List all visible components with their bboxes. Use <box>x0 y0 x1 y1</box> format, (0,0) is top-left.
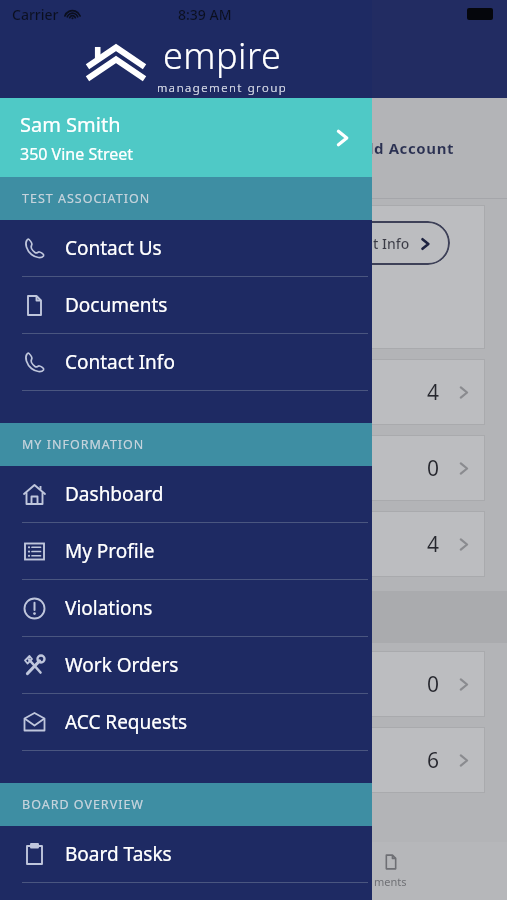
button[interactable]: My Profile <box>0 523 372 580</box>
staticText: Dashboard <box>65 481 164 507</box>
staticText: 0 <box>427 454 440 483</box>
button[interactable]: Documents <box>0 277 372 334</box>
staticText: Add Account <box>353 138 455 158</box>
button[interactable]: 4 <box>200 511 485 577</box>
button[interactable]: 4 <box>200 359 485 425</box>
button[interactable]: 6 <box>200 727 485 793</box>
staticText: Work Orders <box>65 652 179 678</box>
staticText: MY INFORMATION <box>22 436 145 453</box>
button[interactable]: Violations <box>0 580 372 637</box>
staticText: 350 Vine Street <box>20 143 134 165</box>
staticText: 8:39 AM <box>178 5 232 24</box>
button[interactable]: Sam Smith <box>0 98 372 177</box>
staticText: Board Tasks <box>65 841 172 867</box>
staticText: Contact Info <box>65 349 175 375</box>
staticText: Contact Us <box>65 235 162 261</box>
staticText: My Profile <box>65 538 155 564</box>
staticText: ments <box>374 874 407 889</box>
button[interactable]: Work Orders <box>0 637 372 694</box>
button[interactable]: 0 <box>200 651 485 717</box>
staticText: management group <box>157 80 288 96</box>
staticText: Carrier <box>12 5 59 24</box>
staticText: 0 <box>427 670 440 699</box>
staticText: 4 <box>427 530 440 559</box>
button[interactable]: Dashboard <box>0 466 372 523</box>
staticText: Documents <box>65 292 168 318</box>
button[interactable]: Contact Info <box>0 334 372 391</box>
button[interactable]: Contact Us <box>0 220 372 277</box>
staticText: Violations <box>65 595 153 621</box>
staticText: count Info <box>340 234 410 253</box>
button[interactable]: Board Tasks <box>0 826 372 883</box>
staticText: 6 <box>427 746 440 775</box>
staticText: ACC Requests <box>65 709 188 735</box>
button[interactable]: ACC Requests <box>0 694 372 751</box>
button[interactable]: count Info <box>250 221 450 265</box>
staticText: empire <box>163 31 282 80</box>
staticText: 4 <box>427 378 440 407</box>
staticText: BOARD OVERVIEW <box>22 796 144 813</box>
staticText: Sam Smith <box>20 111 121 138</box>
staticText: TEST ASSOCIATION <box>22 190 151 207</box>
button[interactable]: 0 <box>200 435 485 501</box>
